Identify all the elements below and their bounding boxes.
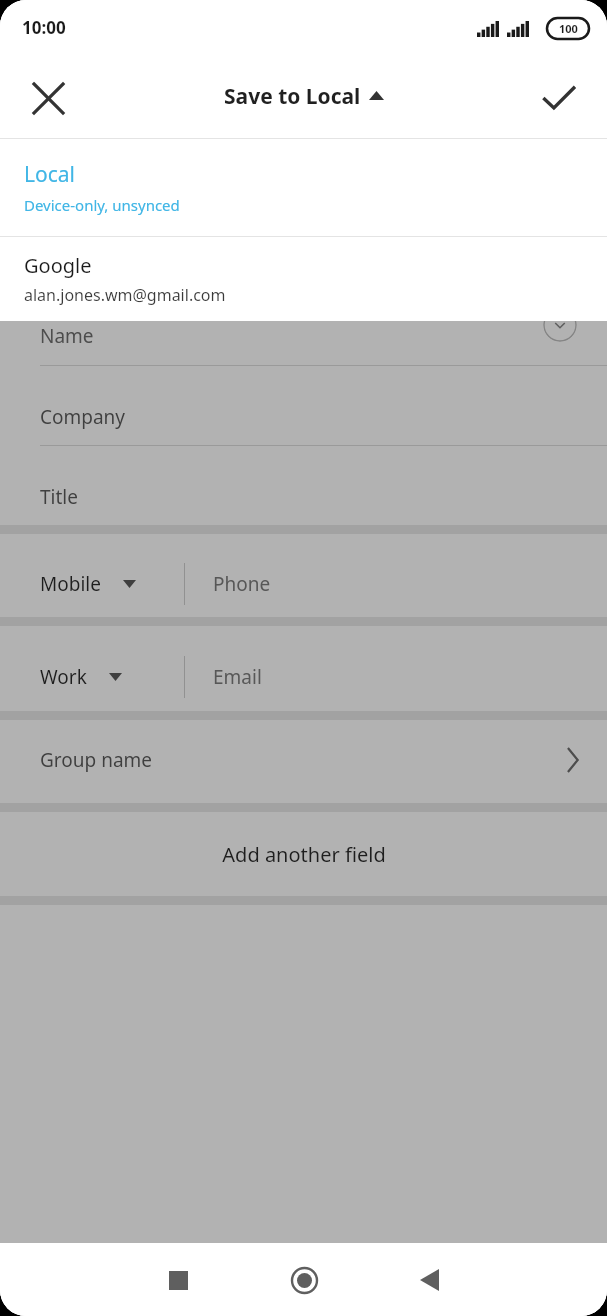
button[interactable]: Work — [0, 645, 184, 709]
staticText: Google — [24, 252, 92, 279]
staticText: Name — [40, 323, 94, 349]
button[interactable]: Expand name — [543, 308, 577, 342]
button[interactable]: Mobile — [0, 552, 184, 616]
button[interactable]: Home — [274, 1250, 334, 1310]
button[interactable]: Email — [185, 645, 607, 709]
staticText: Company — [40, 404, 126, 430]
staticText: Work — [40, 664, 87, 690]
button[interactable]: Recent apps — [148, 1250, 208, 1310]
button[interactable]: Save to Local — [218, 78, 390, 115]
button[interactable]: Local — [0, 139, 607, 236]
button[interactable]: Phone — [185, 552, 607, 616]
button[interactable]: Add another field — [0, 812, 607, 896]
button[interactable]: Group name — [0, 720, 607, 800]
staticText: Title — [40, 484, 78, 510]
button[interactable]: Close — [20, 70, 76, 126]
staticText: Email — [213, 664, 262, 690]
staticText: Mobile — [40, 571, 101, 597]
staticText: Phone — [213, 571, 271, 597]
button[interactable]: Name — [0, 308, 607, 364]
staticText: Device-only, unsynced — [24, 195, 180, 215]
staticText: 100 — [559, 21, 578, 36]
staticText: alan.jones.wm@gmail.com — [24, 284, 226, 306]
staticText: 10:00 — [22, 16, 66, 39]
button[interactable]: Title — [0, 469, 607, 525]
button[interactable]: Save — [531, 70, 587, 126]
staticText: Local — [24, 160, 75, 189]
button[interactable]: Company — [0, 389, 607, 445]
button[interactable]: Back — [399, 1250, 459, 1310]
button[interactable]: Google — [0, 237, 607, 321]
staticText: Group name — [40, 747, 153, 773]
staticText: Save to Local — [224, 82, 361, 111]
staticText: Add another field — [222, 841, 386, 868]
